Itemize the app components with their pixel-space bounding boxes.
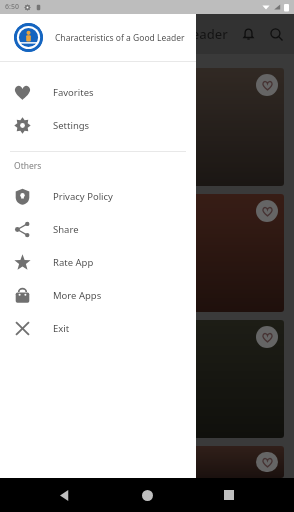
staticText: Others <box>14 160 42 172</box>
staticText: Good Leader <box>16 119 90 135</box>
button[interactable]: Favorite <box>256 74 278 96</box>
staticText: Characteristics of a Good Leader <box>55 32 185 44</box>
staticText: Exit <box>53 322 70 335</box>
button[interactable]: Settings <box>0 109 196 142</box>
staticText: Share <box>53 223 79 236</box>
button[interactable]: Favorite <box>10 446 284 478</box>
staticText: Favorites <box>53 86 94 99</box>
button[interactable]: Rate App <box>0 246 196 279</box>
button[interactable]: Back <box>48 478 82 512</box>
button[interactable]: More Apps <box>0 279 196 312</box>
button[interactable]: Home <box>130 478 164 512</box>
button[interactable]: Notifications <box>236 22 260 46</box>
button[interactable]: Favorite <box>256 452 278 472</box>
staticText: Privacy Policy <box>53 190 113 203</box>
staticText: Good Leader <box>16 245 90 261</box>
button[interactable]: Favorite <box>10 320 284 438</box>
button[interactable]: Privacy Policy <box>0 180 196 213</box>
button[interactable]: Favorite <box>10 68 284 186</box>
button[interactable]: Favorites <box>0 76 196 109</box>
button[interactable]: Favorite <box>256 326 278 348</box>
staticText: Characteristics of a Good Leader <box>26 25 228 43</box>
button[interactable]: Recents <box>212 478 246 512</box>
button[interactable]: Exit <box>0 312 196 345</box>
button[interactable]: Favorite <box>10 194 284 312</box>
staticText: 6:50 <box>5 2 19 12</box>
button[interactable]: Favorite <box>256 200 278 222</box>
staticText: Settings <box>53 119 90 132</box>
staticText: Rate App <box>53 256 94 269</box>
button[interactable]: Share <box>0 213 196 246</box>
staticText: More Apps <box>53 289 102 302</box>
button[interactable]: Search <box>264 22 288 46</box>
